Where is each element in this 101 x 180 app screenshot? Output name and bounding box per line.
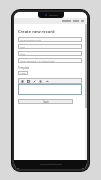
staticText: Create new record (18, 29, 55, 34)
staticText: Enter keyword 1 or leave blank (20, 59, 55, 62)
staticText: Title (20, 45, 25, 48)
button[interactable]: Undo (45, 79, 49, 83)
button[interactable] (18, 84, 82, 95)
staticText: Tags (20, 52, 26, 55)
button[interactable]: List (38, 79, 42, 83)
button[interactable]: Tags (18, 51, 82, 56)
button[interactable]: What inspired me? (18, 37, 82, 42)
staticText: What inspired me? (20, 38, 41, 41)
staticText: Save (43, 100, 49, 104)
button[interactable]: Title (18, 44, 82, 49)
staticText: Template (18, 66, 30, 70)
button[interactable]: Link (32, 79, 36, 83)
button[interactable]: Enter keyword 1 or leave blank (18, 58, 82, 63)
button[interactable]: Image (26, 79, 30, 83)
button[interactable]: Bold (20, 79, 24, 83)
button[interactable]: Save (18, 99, 73, 104)
staticText: None (20, 72, 26, 75)
button[interactable]: None (18, 71, 28, 75)
